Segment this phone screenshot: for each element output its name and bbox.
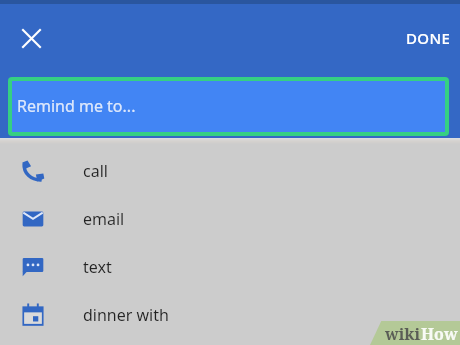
staticText: email: [83, 208, 125, 230]
staticText: How: [421, 323, 458, 345]
staticText: dinner with: [83, 304, 169, 326]
staticText: call: [83, 160, 108, 182]
button[interactable]: text: [0, 243, 460, 291]
button[interactable]: Remind me to...: [12, 81, 445, 132]
staticText: wiki: [385, 323, 421, 345]
staticText: text: [83, 256, 112, 278]
staticText: DONE: [406, 28, 451, 48]
button[interactable]: Close: [14, 21, 48, 55]
staticText: Remind me to...: [17, 95, 136, 117]
button[interactable]: email: [0, 195, 460, 243]
button[interactable]: call: [0, 147, 460, 195]
button[interactable]: dinner with: [0, 291, 460, 339]
button[interactable]: DONE: [398, 22, 459, 54]
